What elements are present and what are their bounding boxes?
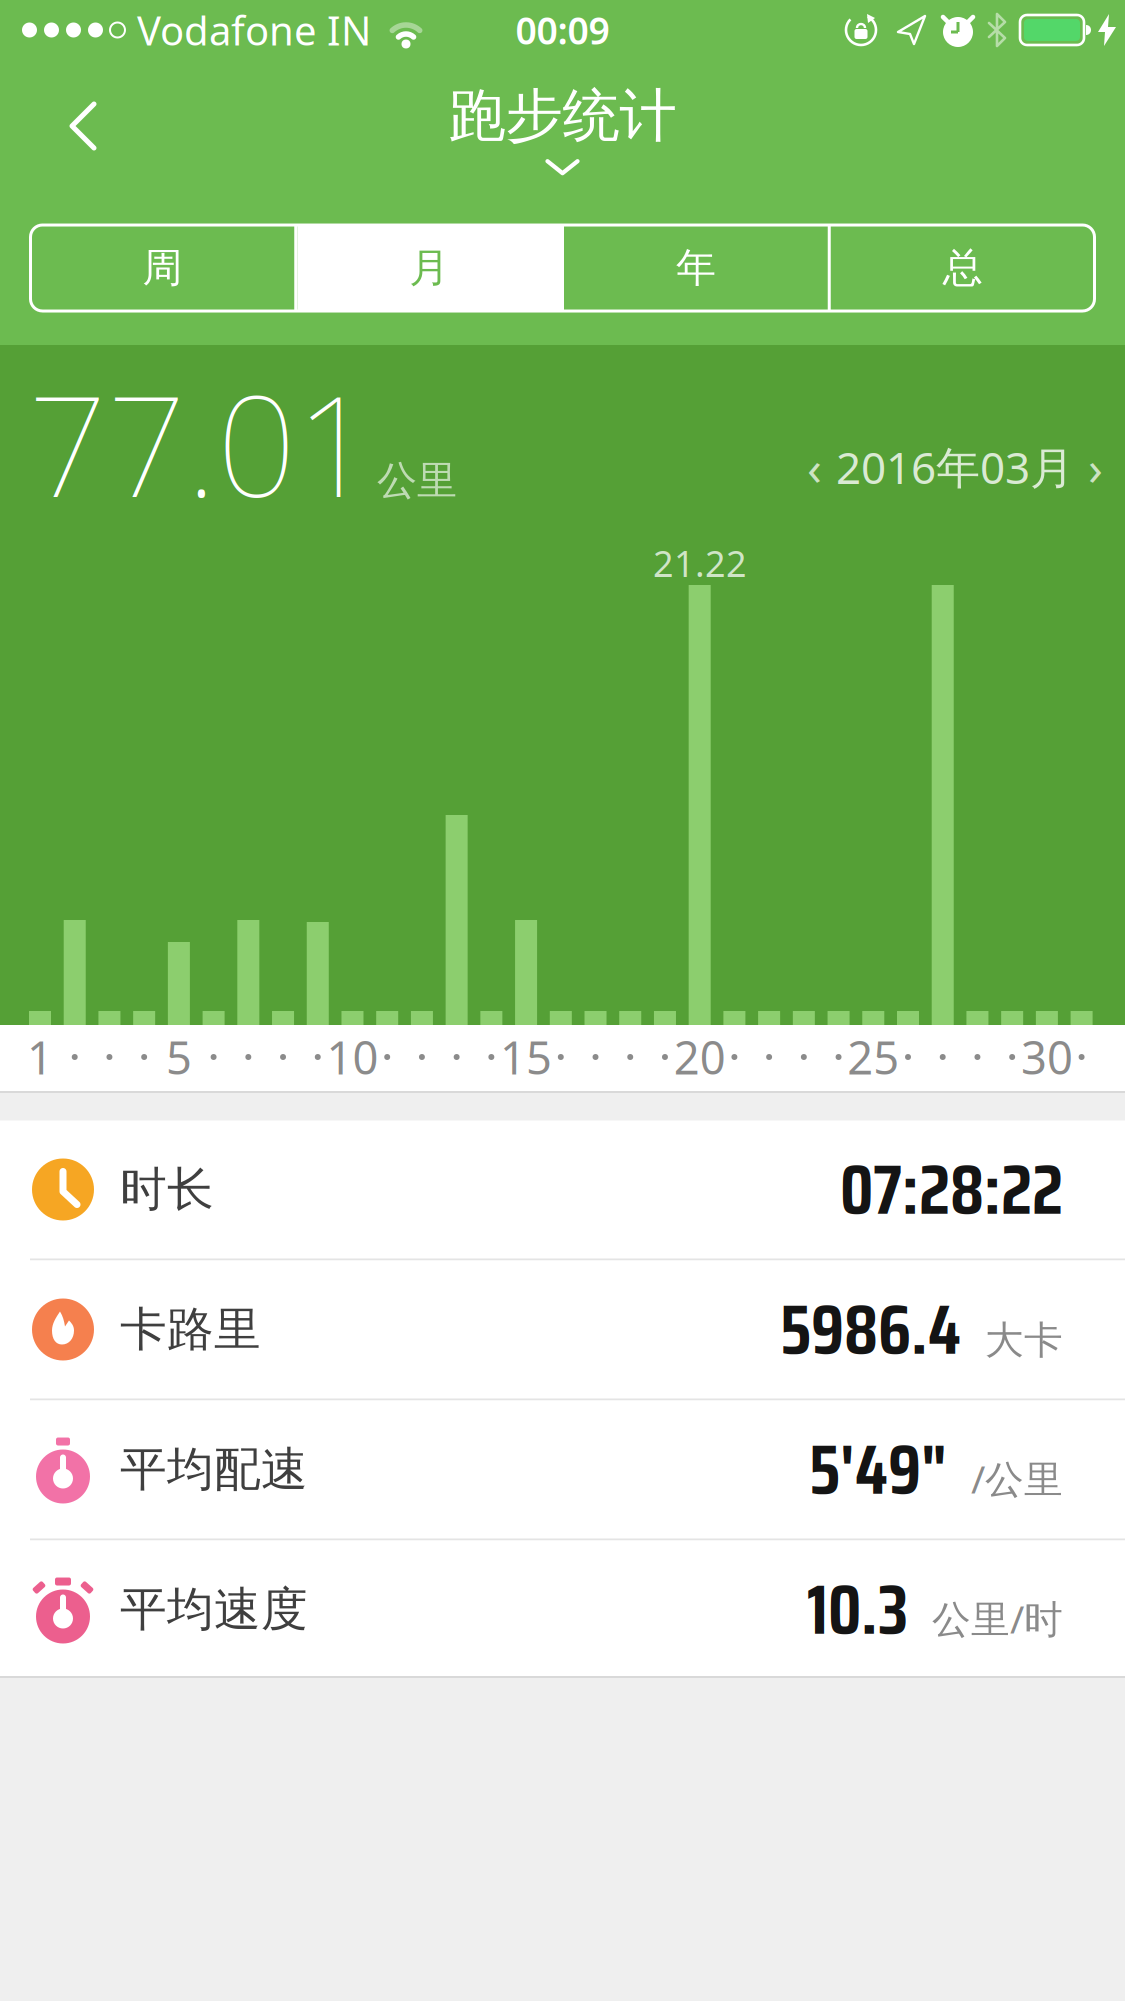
staticText: 1 [27,1027,53,1087]
staticText: 20 [674,1027,726,1087]
button[interactable]: 年 [564,225,828,311]
button[interactable]: 平均速度 [0,1540,1125,1678]
staticText: 公里/时 [932,1593,1063,1644]
staticText: 21.22 [653,539,747,587]
staticText: 5986.4 [780,1275,961,1384]
staticText: 平均速度 [120,1581,308,1638]
staticText: 15 [500,1027,552,1087]
staticText: Vodafone IN [137,3,371,56]
staticText: 5'49" [809,1415,947,1524]
button[interactable]: 跑步统计 [448,81,676,175]
staticText: 年 [676,243,716,292]
staticText: 月 [409,243,449,292]
staticText: 周 [142,243,182,292]
staticText: 00:09 [515,5,609,55]
button[interactable]: 平均配速 [0,1400,1125,1538]
staticText: 跑步统计 [448,81,676,151]
staticText: 25 [847,1027,899,1087]
staticText: 时长 [120,1161,214,1218]
staticText: /公里 [971,1453,1063,1504]
button[interactable]: 时长 [0,1120,1125,1258]
staticText: 卡路里 [120,1301,261,1358]
staticText: 大卡 [985,1317,1063,1364]
staticText: 10 [326,1027,378,1087]
button[interactable]: 总 [831,225,1095,311]
button[interactable]: 月 [297,225,561,311]
staticText: 10.3 [807,1555,908,1664]
staticText: 30 [1021,1027,1073,1087]
staticText: 5 [166,1027,192,1087]
staticText: 公里 [377,456,457,505]
staticText: 07:28:22 [840,1135,1063,1244]
staticText: 2016年03月 [836,438,1074,496]
button[interactable]: Back [3,80,129,172]
staticText: 平均配速 [120,1441,308,1498]
button[interactable]: 周 [30,225,294,311]
button[interactable]: 2016年03月 [807,345,1125,499]
staticText: 总 [943,243,983,292]
staticText: › [1088,435,1103,499]
staticText: 77.01 [28,351,375,535]
button[interactable]: 卡路里 [0,1260,1125,1398]
staticText: ‹ [807,435,822,499]
